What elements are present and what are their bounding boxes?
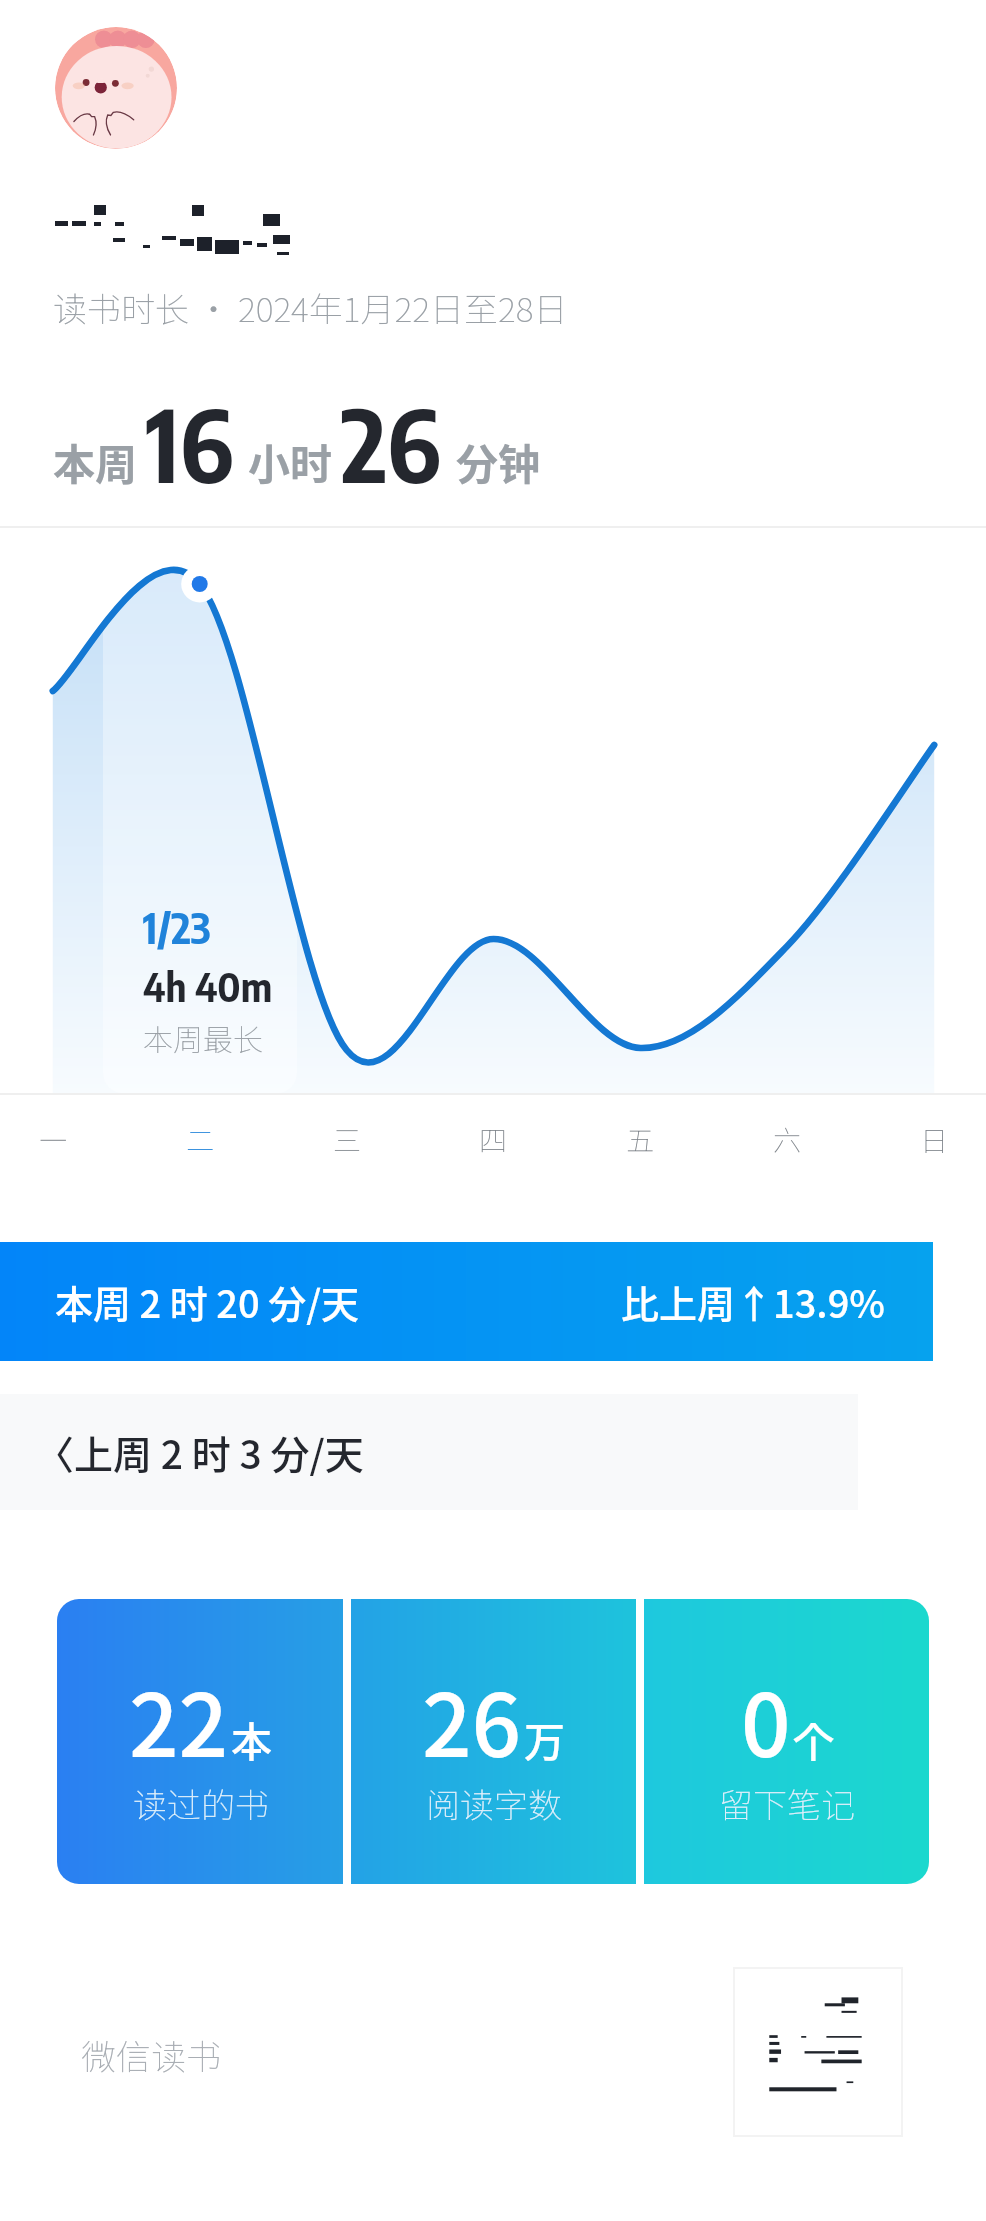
staticText: 三 xyxy=(333,1119,362,1160)
button[interactable]: QR code xyxy=(734,1968,902,2136)
staticText: 本周 2 时 20 分/天 xyxy=(55,1274,360,1329)
staticText: 二 xyxy=(186,1119,215,1160)
staticText: 本周最长 xyxy=(143,1016,263,1059)
staticText: 16 xyxy=(146,381,234,505)
button[interactable]: 日 xyxy=(898,1103,970,1176)
staticText: 26 xyxy=(341,381,441,505)
button[interactable]: 22 xyxy=(57,1599,343,1884)
staticText: 本周 xyxy=(53,431,138,492)
staticText: 4h 40m xyxy=(143,961,273,1011)
button[interactable]: 〈上周 2 时 3 分/天 xyxy=(0,1394,858,1510)
button[interactable]: 三 xyxy=(311,1103,383,1176)
button[interactable]: 本周 2 时 20 分/天 xyxy=(0,1242,933,1361)
staticText: 阅读字数 xyxy=(426,1779,562,1828)
staticText: 六 xyxy=(773,1119,802,1160)
staticText: 比上周↑13.9% xyxy=(621,1274,885,1329)
staticText: 26 xyxy=(422,1656,522,1782)
staticText: 22 xyxy=(129,1656,229,1782)
staticText: 1/23 xyxy=(143,901,211,953)
staticText: 分钟 xyxy=(456,431,541,492)
button[interactable]: Profile avatar xyxy=(55,27,177,149)
staticText: 留下笔记 xyxy=(719,1779,855,1828)
button[interactable]: 26 xyxy=(351,1599,636,1884)
staticText: 0 xyxy=(741,1656,791,1782)
staticText: 四 xyxy=(479,1119,508,1160)
staticText: 读过的书 xyxy=(133,1779,269,1828)
staticText: 读书时长 · 2024年1月22日至28日 xyxy=(53,283,568,332)
button[interactable]: 二 xyxy=(164,1103,236,1176)
button[interactable]: 0 xyxy=(644,1599,929,1884)
button[interactable]: 五 xyxy=(604,1103,676,1176)
button[interactable]: 一 xyxy=(17,1103,89,1176)
staticText: 日 xyxy=(920,1119,949,1160)
staticText: 〈上周 2 时 3 分/天 xyxy=(35,1424,364,1480)
staticText: 五 xyxy=(626,1119,655,1160)
staticText: 个 xyxy=(793,1709,834,1768)
staticText: 微信读书 xyxy=(81,2029,222,2080)
staticText: 万 xyxy=(524,1709,565,1768)
button[interactable]: 六 xyxy=(751,1103,823,1176)
staticText: 一 xyxy=(39,1119,68,1160)
staticText: 本 xyxy=(231,1709,272,1768)
button[interactable]: 四 xyxy=(457,1103,529,1176)
staticText: 小时 xyxy=(248,431,333,492)
